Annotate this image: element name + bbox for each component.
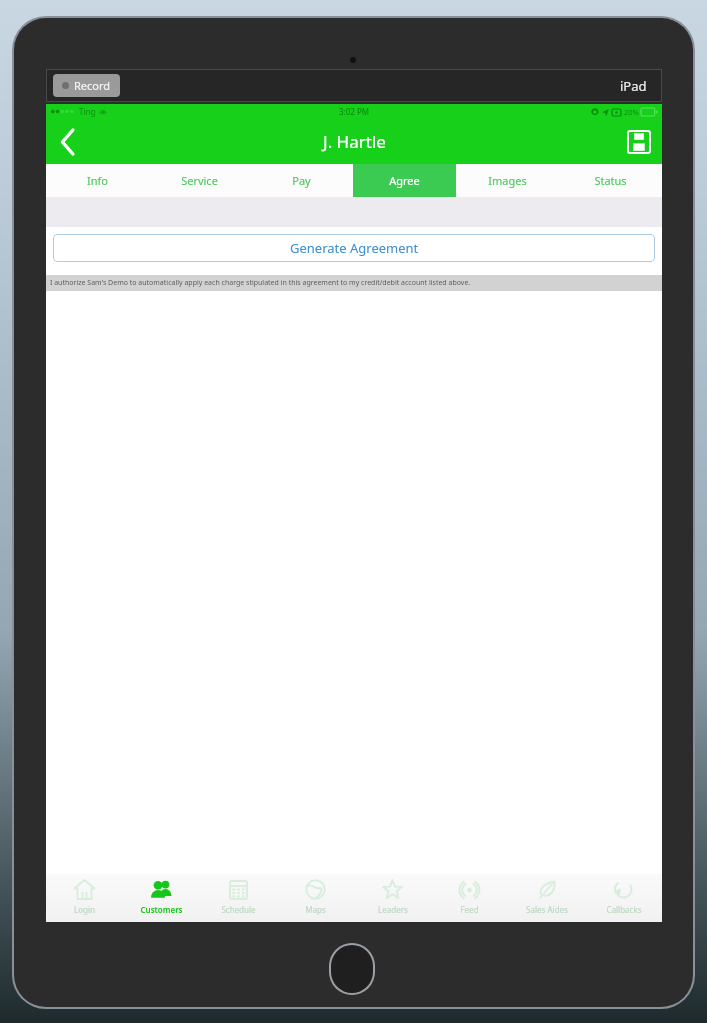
button[interactable]: Status xyxy=(559,164,662,197)
button[interactable]: Back xyxy=(46,119,90,164)
staticText: Info xyxy=(87,173,108,188)
button[interactable]: Agree xyxy=(353,164,456,197)
button[interactable]: Login xyxy=(46,877,123,922)
button[interactable]: Maps xyxy=(277,877,354,922)
button[interactable]: Leaders xyxy=(354,877,431,922)
button[interactable]: Sales Aides xyxy=(508,877,585,922)
button[interactable]: Service xyxy=(148,164,250,197)
staticText: Pay xyxy=(292,173,311,188)
staticText: Login xyxy=(74,904,95,915)
button[interactable]: Info xyxy=(46,164,148,197)
staticText: J. Hartle xyxy=(323,130,386,153)
staticText: 20% xyxy=(624,107,639,117)
button[interactable]: Home xyxy=(331,945,373,993)
staticText: Callbacks xyxy=(606,904,642,915)
staticText: Record xyxy=(74,78,111,93)
staticText: Service xyxy=(181,173,218,188)
button[interactable]: Schedule xyxy=(200,877,277,922)
staticText: 3:02 PM xyxy=(339,106,370,117)
button[interactable]: Images xyxy=(456,164,559,197)
button[interactable]: Save xyxy=(616,119,662,164)
button[interactable]: Feed xyxy=(431,877,508,922)
button[interactable]: Callbacks xyxy=(585,877,662,922)
staticText: Status xyxy=(594,173,627,188)
button[interactable]: Customers xyxy=(123,877,200,922)
button[interactable]: Record xyxy=(53,74,120,97)
staticText: iPad xyxy=(620,77,647,95)
staticText: Maps xyxy=(305,904,326,915)
staticText: I authorize Sam's Demo to automatically … xyxy=(50,278,471,288)
button[interactable]: Pay xyxy=(250,164,353,197)
staticText: Schedule xyxy=(221,904,256,915)
staticText: Images xyxy=(488,173,527,188)
staticText: Leaders xyxy=(378,904,408,915)
staticText: Feed xyxy=(460,904,479,915)
button[interactable]: Generate Agreement xyxy=(53,234,655,262)
staticText: Generate Agreement xyxy=(290,239,419,257)
staticText: Sales Aides xyxy=(526,904,568,915)
staticText: Ting xyxy=(79,106,96,117)
staticText: Agree xyxy=(389,173,420,188)
staticText: Customers xyxy=(140,904,183,915)
